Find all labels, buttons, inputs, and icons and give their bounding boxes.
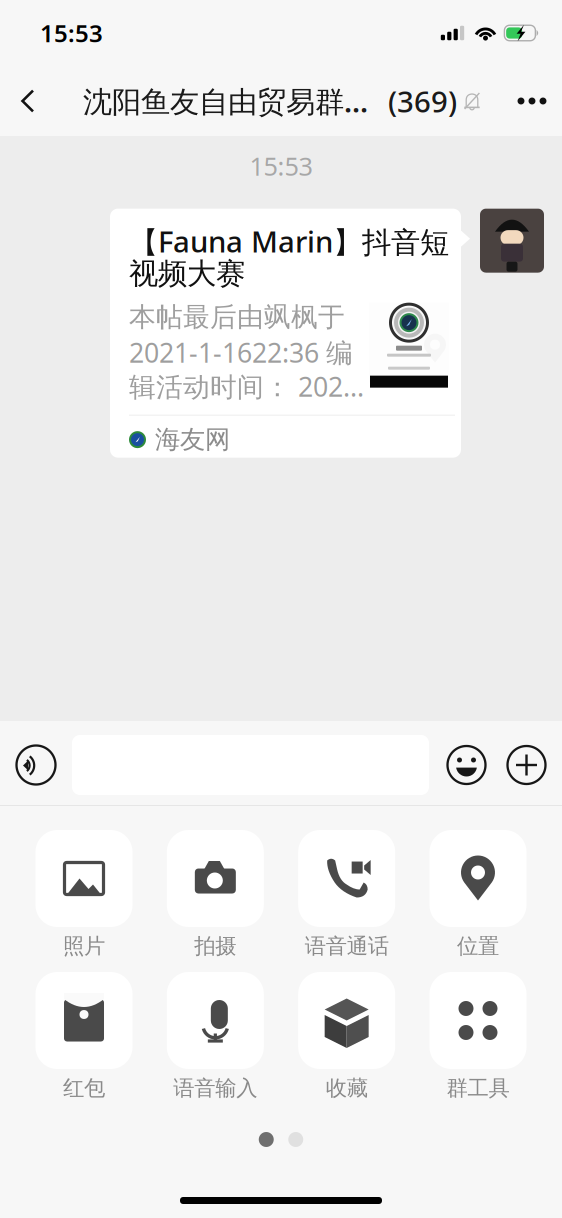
- staticText: 视频大赛: [129, 256, 245, 292]
- button[interactable]: 语音输入: [167, 972, 264, 1114]
- staticText: 语音输入: [173, 1075, 257, 1101]
- staticText: 照片: [63, 933, 105, 959]
- button[interactable]: 【Fauna Marin】抖音短: [110, 209, 461, 458]
- staticText: 海友网: [155, 424, 230, 455]
- button[interactable]: 语音通话: [298, 830, 395, 972]
- staticText: 15:53: [249, 149, 312, 183]
- staticText: 收藏: [326, 1075, 368, 1101]
- staticText: 沈阳鱼友自由贸易群...: [83, 81, 368, 120]
- staticText: 【Fauna Marin】抖音短: [129, 222, 449, 261]
- button[interactable]: 收藏: [298, 972, 395, 1114]
- staticText: (369): [388, 81, 457, 120]
- button[interactable]: Avatar: [480, 209, 544, 273]
- button[interactable]: More options: [507, 721, 546, 805]
- button[interactable]: 位置: [429, 830, 526, 972]
- button[interactable]: 照片: [35, 830, 132, 972]
- staticText: 本帖最后由飒枫于: [129, 301, 345, 333]
- button[interactable]: Back: [0, 69, 56, 133]
- staticText: 辑活动时间： 202...: [129, 369, 364, 404]
- staticText: 群工具: [446, 1075, 509, 1101]
- staticText: 红包: [63, 1075, 105, 1101]
- staticText: 语音通话: [305, 933, 389, 959]
- button[interactable]: More: [502, 69, 562, 133]
- button[interactable]: Message input: [72, 721, 429, 805]
- staticText: 位置: [457, 933, 499, 959]
- button[interactable]: 群工具: [429, 972, 526, 1114]
- button[interactable]: 红包: [35, 972, 132, 1114]
- staticText: 拍摄: [194, 933, 236, 959]
- staticText: 2021-1-1622:36 编: [129, 335, 353, 370]
- staticText: 15:53: [40, 17, 103, 49]
- button[interactable]: Voice message: [16, 721, 56, 805]
- button[interactable]: 拍摄: [167, 830, 264, 972]
- button[interactable]: Emoji: [447, 721, 486, 805]
